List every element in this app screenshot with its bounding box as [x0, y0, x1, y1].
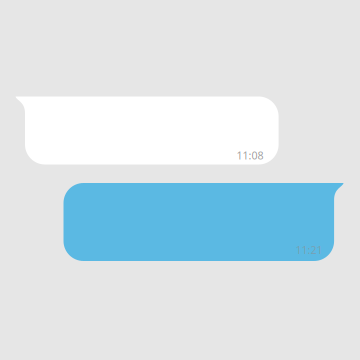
button[interactable]: 11:21 [63, 183, 343, 261]
button[interactable]: 11:08 [16, 96, 279, 164]
staticText: 11:21 [295, 243, 322, 257]
staticText: 11:08 [237, 148, 264, 162]
